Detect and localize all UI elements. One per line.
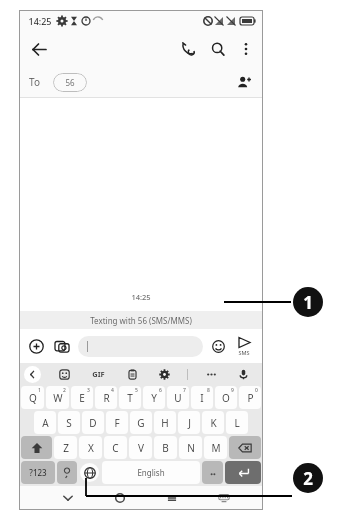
button[interactable]: Y	[143, 386, 165, 409]
button[interactable]: L	[226, 411, 248, 434]
button[interactable]: T	[119, 386, 141, 409]
button[interactable]: H	[154, 411, 176, 434]
staticText: 4	[111, 387, 114, 394]
staticText: Y	[151, 391, 157, 405]
button[interactable]: More	[202, 365, 220, 383]
button[interactable]: B	[154, 436, 177, 459]
button[interactable]: Search	[205, 36, 231, 62]
button[interactable]: English	[102, 461, 200, 484]
staticText: V	[138, 441, 144, 455]
staticText: Q	[29, 391, 37, 405]
button[interactable]: Z	[54, 436, 77, 459]
button[interactable]: Enter	[225, 461, 261, 484]
staticText: T	[127, 391, 133, 405]
button[interactable]: X	[79, 436, 102, 459]
staticText: B	[162, 441, 169, 455]
staticText: A	[42, 416, 49, 430]
button[interactable]: Send SMS	[231, 336, 257, 356]
staticText: G	[137, 416, 145, 430]
staticText: 1	[303, 291, 313, 314]
button[interactable]: P	[239, 386, 261, 409]
button[interactable]: I	[191, 386, 213, 409]
staticText: 9	[231, 387, 234, 394]
button[interactable]: Backspace	[229, 436, 261, 459]
button[interactable]: Emoji	[208, 336, 228, 356]
button[interactable]: A	[34, 411, 56, 434]
staticText: 8	[207, 387, 210, 394]
button[interactable]: W	[46, 386, 69, 409]
button[interactable]: Change language	[80, 463, 99, 482]
button[interactable]: S	[58, 411, 80, 434]
button[interactable]	[78, 336, 203, 357]
staticText: H	[161, 416, 169, 430]
button[interactable]: U	[167, 386, 189, 409]
staticText: K	[210, 416, 217, 430]
button[interactable]: Camera	[51, 335, 73, 357]
staticText: E	[79, 391, 85, 405]
button[interactable]: Keyboard settings	[155, 365, 173, 383]
button[interactable]: E	[71, 386, 93, 409]
staticText: Z	[63, 441, 69, 455]
button[interactable]: Attach	[25, 335, 47, 357]
staticText: N	[187, 441, 195, 455]
staticText: O	[222, 391, 230, 405]
staticText: X	[88, 441, 94, 455]
button[interactable]: More options	[233, 36, 259, 62]
staticText: P	[247, 391, 254, 405]
button[interactable]: Back	[24, 34, 54, 64]
button[interactable]: Comma and emoji	[57, 461, 77, 484]
button[interactable]: Hide keyboard	[214, 488, 234, 508]
button[interactable]: J	[178, 411, 200, 434]
button[interactable]: V	[129, 436, 152, 459]
button[interactable]: Q	[21, 386, 44, 409]
button[interactable]: C	[104, 436, 127, 459]
button[interactable]: Recent apps	[162, 488, 182, 508]
staticText: 1	[38, 387, 41, 394]
staticText: R	[103, 391, 110, 405]
staticText: 5	[135, 387, 138, 394]
button[interactable]: O	[215, 386, 237, 409]
staticText: 7	[183, 387, 186, 394]
staticText: F	[114, 416, 120, 430]
button[interactable]: D	[82, 411, 104, 434]
button[interactable]: Stickers	[55, 365, 73, 383]
staticText: C	[112, 441, 119, 455]
button[interactable]: Clipboard	[123, 365, 141, 383]
staticText: I	[200, 391, 204, 405]
staticText: To	[29, 75, 40, 89]
staticText: English	[137, 467, 165, 478]
staticText: 2	[303, 467, 313, 490]
staticText: W	[53, 391, 63, 405]
button[interactable]: Home	[110, 488, 130, 508]
staticText: Texting with 56 (SMS/MMS)	[90, 315, 192, 326]
button[interactable]: Add contact	[232, 70, 256, 94]
staticText: 2	[63, 387, 66, 394]
button[interactable]: Collapse toolbar	[24, 366, 41, 383]
button[interactable]: Period	[202, 461, 223, 484]
button[interactable]: Shift	[21, 436, 52, 459]
button[interactable]: 56	[53, 73, 87, 92]
button[interactable]: Call	[175, 36, 201, 62]
button[interactable]: ?123	[21, 461, 55, 484]
button[interactable]: Voice input	[234, 365, 252, 383]
staticText: S	[66, 416, 72, 430]
staticText: D	[89, 416, 97, 430]
staticText: GIF	[92, 369, 105, 379]
button[interactable]: Back	[58, 488, 78, 508]
staticText: ?123	[29, 467, 47, 478]
staticText: U	[174, 391, 182, 405]
staticText: 56	[65, 77, 75, 88]
button[interactable]: F	[106, 411, 128, 434]
button[interactable]: N	[179, 436, 202, 459]
button[interactable]: G	[130, 411, 152, 434]
staticText: M	[211, 441, 221, 455]
staticText: 3	[87, 387, 90, 394]
button[interactable]: K	[202, 411, 224, 434]
button[interactable]: M	[204, 436, 227, 459]
staticText: SMS	[238, 349, 250, 356]
staticText: 6	[159, 387, 162, 394]
staticText: 14:25	[19, 292, 263, 302]
staticText: 0	[255, 387, 258, 394]
button[interactable]: GIF	[87, 365, 109, 383]
button[interactable]: R	[95, 386, 117, 409]
